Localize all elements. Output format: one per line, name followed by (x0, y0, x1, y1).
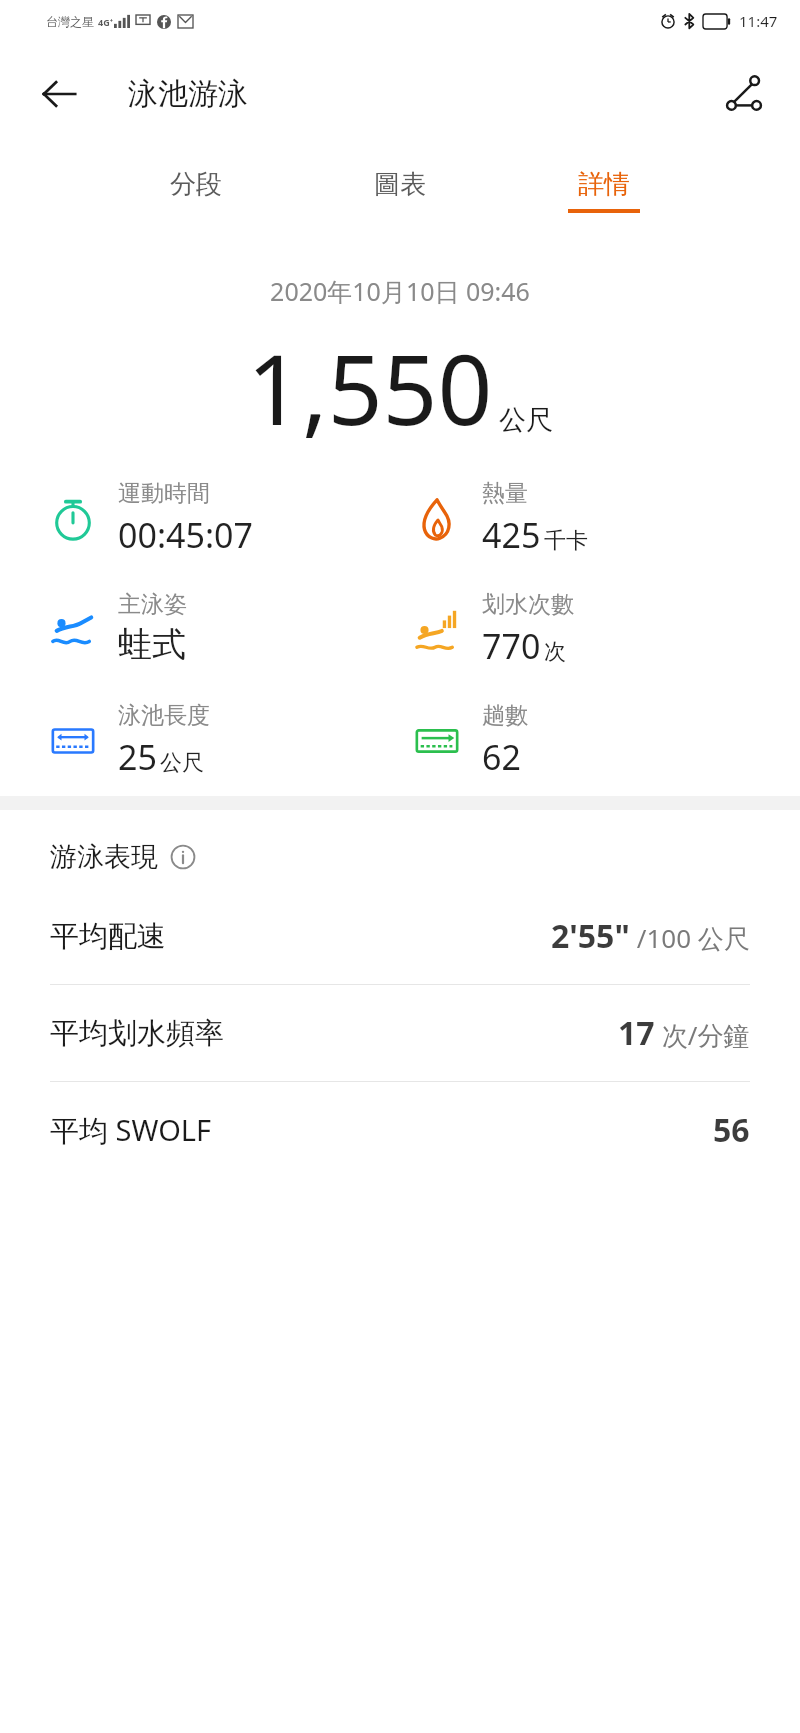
button[interactable]: 分段 (150, 162, 242, 219)
staticText: 圖表 (374, 168, 426, 201)
staticText: 運動時間 (118, 479, 210, 508)
staticText: 千卡 (544, 527, 588, 555)
staticText: 公尺 (160, 749, 204, 777)
staticText: 熱量 (482, 479, 528, 508)
staticText: 425 (482, 512, 541, 558)
button[interactable]: 平均配速 (0, 888, 800, 984)
staticText: 划水次數 (482, 590, 574, 619)
staticText: 游泳表現 (50, 840, 158, 874)
staticText: 主泳姿 (118, 590, 187, 619)
staticText: 62 (482, 734, 521, 780)
staticText: 770 (482, 623, 541, 669)
staticText: 17 (618, 1011, 655, 1055)
staticText: 平均 SWOLF (50, 1110, 212, 1150)
button[interactable]: 詳情 (558, 162, 650, 219)
staticText: 泳池游泳 (128, 75, 248, 113)
button[interactable]: Back (30, 65, 88, 123)
staticText: 1,550 (247, 322, 493, 453)
staticText: 4G⁺ (98, 16, 113, 28)
staticText: 詳情 (578, 168, 630, 201)
staticText: 泳池長度 (118, 701, 210, 730)
staticText: 25 (118, 734, 157, 780)
staticText: 平均划水頻率 (50, 1015, 224, 1052)
button[interactable]: 泳池長度 (44, 701, 400, 780)
button[interactable]: 趟數 (408, 701, 800, 780)
button[interactable]: 圖表 (354, 162, 446, 219)
button[interactable]: 主泳姿 (44, 590, 400, 666)
staticText: 次/分鐘 (655, 1017, 750, 1053)
staticText: 平均配速 (50, 918, 166, 955)
staticText: 台灣之星 (46, 14, 94, 29)
button[interactable]: 熱量 (408, 479, 800, 558)
staticText: 56 (713, 1108, 750, 1152)
staticText: 分段 (170, 168, 222, 201)
staticText: 蛙式 (118, 623, 186, 666)
staticText: 11:47 (739, 11, 778, 31)
button[interactable]: 平均划水頻率 (0, 985, 800, 1081)
button[interactable]: 運動時間 (44, 479, 400, 558)
button[interactable]: 平均 SWOLF (0, 1082, 800, 1178)
staticText: 公尺 (499, 403, 553, 437)
staticText: 2'55" (551, 914, 630, 958)
staticText: 趟數 (482, 701, 528, 730)
staticText: 次 (544, 638, 566, 666)
button[interactable]: Share (714, 64, 774, 124)
staticText: 2020年10月10日 09:46 (270, 274, 530, 308)
button[interactable]: 划水次數 (408, 590, 800, 669)
staticText: /100 公尺 (630, 920, 750, 956)
button[interactable]: 游泳表現 (50, 840, 800, 874)
staticText: 00:45:07 (118, 512, 253, 558)
